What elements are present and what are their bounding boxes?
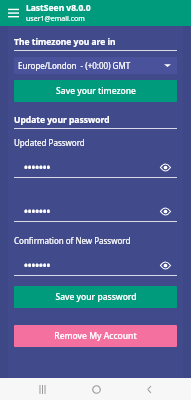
staticText: The timezone you are in <box>14 36 116 48</box>
button[interactable]: Open navigation menu <box>0 0 26 26</box>
button[interactable]: Back <box>138 378 160 400</box>
button[interactable]: Home <box>85 378 107 400</box>
staticText: ••••••• <box>24 204 51 218</box>
staticText: Europe/London - (+0:00) GMT <box>18 60 131 71</box>
button[interactable]: Show password <box>157 203 173 219</box>
staticText: user1@email.com <box>26 14 85 24</box>
staticText: Updated Password <box>14 137 85 148</box>
staticText: Update your password <box>14 114 110 126</box>
button[interactable]: Recent apps <box>31 378 53 400</box>
button[interactable]: Remove My Account <box>14 325 177 347</box>
button[interactable]: Save your timezone <box>14 80 177 102</box>
staticText: Remove My Account <box>54 330 137 342</box>
button[interactable]: Europe/London - (+0:00) GMT <box>14 57 177 74</box>
staticText: Confirmation of New Password <box>14 235 131 246</box>
button[interactable]: Show password <box>157 159 173 175</box>
staticText: ••••••• <box>24 258 51 272</box>
staticText: Save your timezone <box>56 85 136 97</box>
staticText: LastSeen v8.0.0 <box>26 2 91 14</box>
staticText: Save your password <box>55 291 137 303</box>
button[interactable]: Save your password <box>14 286 177 308</box>
button[interactable]: Show password <box>157 257 173 273</box>
staticText: ••••••• <box>24 160 51 174</box>
